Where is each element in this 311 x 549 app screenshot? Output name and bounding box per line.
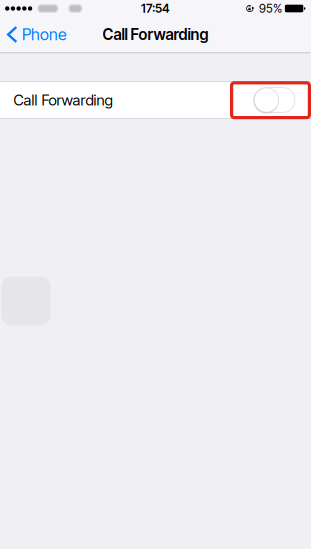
staticText: 17:54 xyxy=(141,1,170,16)
staticText: 95% xyxy=(259,1,282,16)
staticText: Call Forwarding xyxy=(13,91,112,109)
staticText: Phone xyxy=(22,25,67,44)
staticText: Call Forwarding xyxy=(102,25,208,44)
button[interactable]: Phone xyxy=(0,17,77,52)
button[interactable]: Call Forwarding xyxy=(0,81,311,119)
